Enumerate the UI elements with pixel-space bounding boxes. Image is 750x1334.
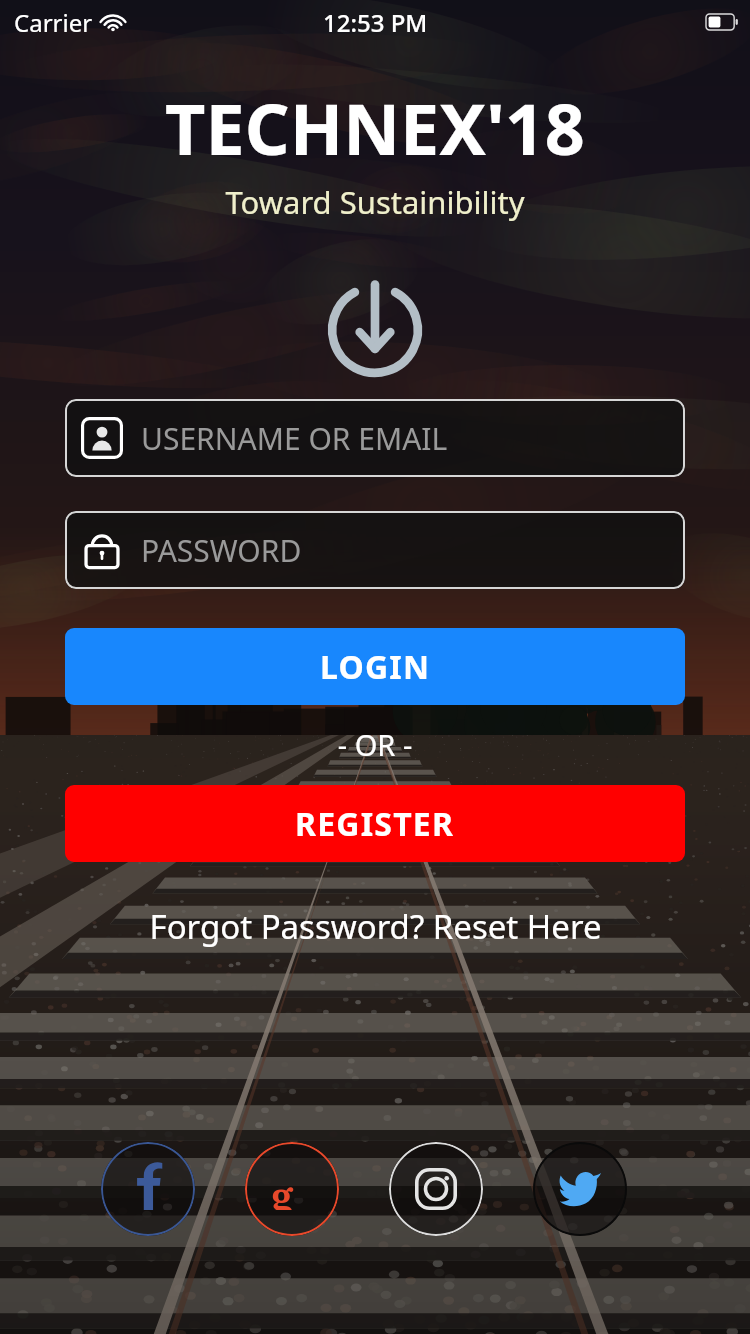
- button[interactable]: Sign in with Google Plus: [245, 1142, 339, 1236]
- staticText: REGISTER: [295, 802, 455, 846]
- staticText: Toward Sustainibility: [0, 181, 750, 223]
- staticText: LOGIN: [320, 645, 431, 689]
- button[interactable]: PASSWORD: [65, 511, 685, 589]
- button[interactable]: Sign in with Facebook: [101, 1142, 195, 1236]
- staticText: TECHNEX'18: [0, 80, 750, 175]
- staticText: 12:53 PM: [323, 6, 428, 39]
- button[interactable]: Forgot Password? Reset Here: [0, 904, 750, 949]
- button[interactable]: REGISTER: [65, 785, 685, 862]
- button[interactable]: USERNAME OR EMAIL: [65, 399, 685, 477]
- button[interactable]: LOGIN: [65, 628, 685, 705]
- staticText: USERNAME OR EMAIL: [141, 418, 448, 459]
- staticText: PASSWORD: [141, 530, 302, 571]
- staticText: g+: [271, 1168, 313, 1210]
- button[interactable]: Sign in with Instagram: [389, 1142, 483, 1236]
- staticText: Forgot Password? Reset Here: [149, 904, 602, 949]
- button[interactable]: Sign in with Twitter: [533, 1142, 627, 1236]
- staticText: Carrier: [14, 6, 93, 39]
- staticText: - OR -: [0, 725, 750, 764]
